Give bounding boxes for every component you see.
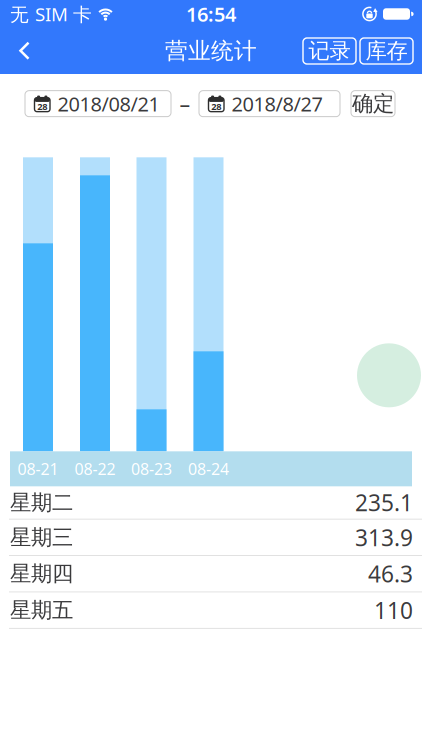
- staticText: 确定: [352, 91, 394, 117]
- staticText: 星期三: [10, 524, 73, 550]
- button[interactable]: 星期三: [0, 519, 422, 556]
- button[interactable]: [0, 41, 30, 60]
- staticText: 08-24: [188, 458, 229, 479]
- button[interactable]: 库存: [360, 38, 413, 64]
- staticText: 313.9: [355, 522, 413, 552]
- staticText: 星期二: [10, 489, 73, 516]
- staticText: –: [179, 89, 190, 118]
- staticText: 星期四: [10, 561, 73, 587]
- staticText: 库存: [365, 38, 407, 64]
- staticText: 46.3: [368, 559, 413, 589]
- staticText: 2018/8/27: [231, 90, 322, 117]
- button[interactable]: 星期五: [0, 592, 422, 629]
- button[interactable]: 星期四: [0, 556, 422, 592]
- button[interactable]: 记录: [303, 38, 356, 64]
- staticText: 无 SIM 卡: [10, 2, 92, 26]
- staticText: 08-23: [131, 458, 172, 479]
- staticText: 16:54: [186, 1, 236, 27]
- staticText: 110: [374, 595, 413, 625]
- button[interactable]: 确定: [351, 91, 395, 117]
- staticText: 营业统计: [165, 37, 257, 65]
- staticText: 28: [37, 100, 47, 113]
- staticText: 2018/08/21: [57, 90, 159, 117]
- button[interactable]: 28: [25, 91, 171, 117]
- button[interactable]: 28: [199, 91, 340, 117]
- staticText: 28: [211, 100, 221, 113]
- staticText: 记录: [308, 38, 350, 64]
- staticText: 08-22: [74, 458, 115, 479]
- staticText: 235.1: [355, 487, 413, 518]
- button[interactable]: [357, 343, 421, 407]
- staticText: 星期五: [10, 597, 73, 623]
- button[interactable]: 星期二: [0, 486, 422, 519]
- staticText: 08-21: [17, 458, 58, 479]
